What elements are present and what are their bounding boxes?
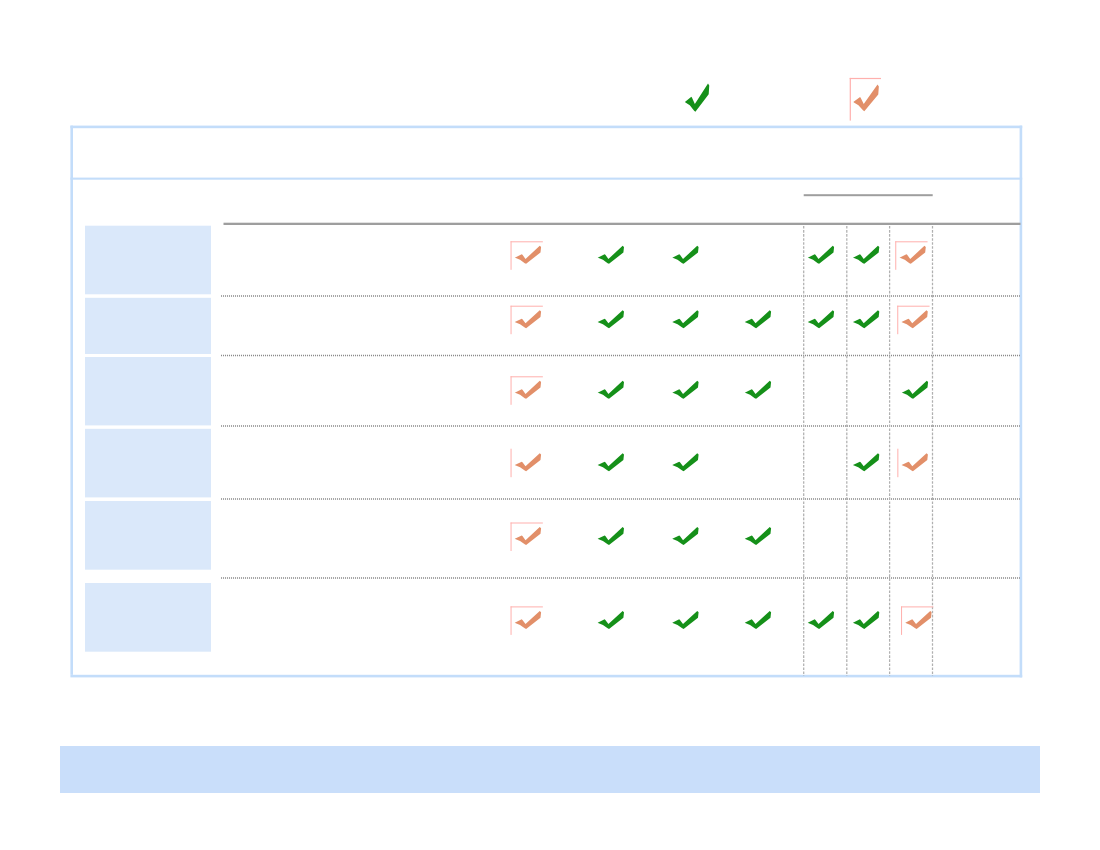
button[interactable]: Feature row 4 [73,426,1020,499]
button[interactable]: Partially supported legend [845,74,889,124]
button[interactable]: Feature row 5 [73,499,1020,578]
button[interactable]: Supported legend [678,76,718,120]
button[interactable]: Feature row 1 [73,225,1020,296]
button[interactable]: Feature row 3 [73,356,1020,427]
button[interactable]: Feature row 6 [73,578,1020,674]
button[interactable]: Feature row 2 [73,296,1020,356]
